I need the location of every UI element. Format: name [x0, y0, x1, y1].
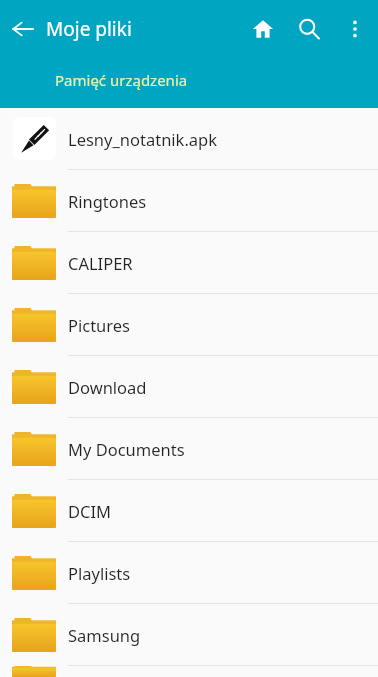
staticText: My Documents — [68, 438, 185, 460]
staticText: Samsung — [68, 624, 141, 646]
button[interactable]: More options — [332, 0, 378, 57]
button[interactable]: Samsung — [0, 604, 378, 666]
staticText: Pamięć urządzenia — [55, 70, 188, 90]
button[interactable]: Pictures — [0, 294, 378, 356]
button[interactable]: CALIPER — [0, 232, 378, 294]
button[interactable]: Home — [240, 0, 286, 57]
button[interactable]: Search — [286, 0, 332, 57]
staticText: DCIM — [68, 500, 112, 522]
button[interactable]: DCIM — [0, 480, 378, 542]
staticText: Ringtones — [68, 190, 147, 212]
button[interactable]: Pamięć urządzenia — [0, 57, 378, 108]
button[interactable] — [0, 666, 378, 677]
staticText: Moje pliki — [46, 16, 132, 42]
button[interactable]: Ringtones — [0, 170, 378, 232]
button[interactable]: Playlists — [0, 542, 378, 604]
staticText: Pictures — [68, 314, 131, 336]
staticText: Lesny_notatnik.apk — [68, 128, 218, 150]
button[interactable]: Lesny_notatnik.apk — [0, 108, 378, 170]
button[interactable]: Download — [0, 356, 378, 418]
staticText: Download — [68, 376, 147, 398]
button[interactable]: Back — [0, 0, 46, 57]
button[interactable]: My Documents — [0, 418, 378, 480]
staticText: Playlists — [68, 562, 131, 584]
staticText: CALIPER — [68, 252, 133, 274]
